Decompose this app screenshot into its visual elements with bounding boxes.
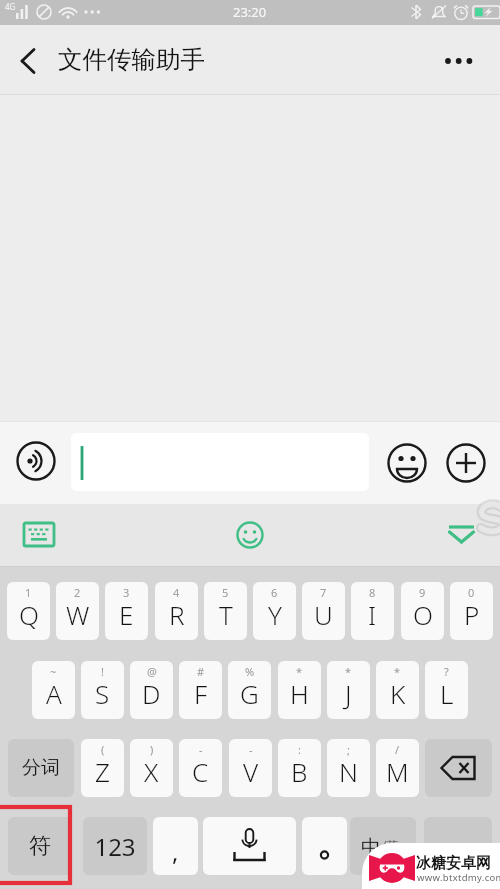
staticText: - bbox=[199, 742, 203, 757]
staticText: O bbox=[413, 597, 433, 632]
staticText: 冰糖安卓网 bbox=[416, 854, 491, 873]
staticText: ) bbox=[150, 742, 154, 757]
staticText: X bbox=[144, 754, 159, 789]
staticText: U bbox=[314, 597, 333, 632]
button[interactable]: 123 bbox=[83, 817, 147, 875]
staticText: ~ bbox=[50, 664, 57, 679]
staticText: 中 bbox=[361, 835, 381, 860]
button[interactable]: 0 bbox=[450, 582, 493, 640]
button[interactable]: 中 bbox=[350, 817, 416, 875]
button[interactable]: 4 bbox=[155, 582, 198, 640]
button[interactable]: Period bbox=[302, 817, 347, 875]
staticText: K bbox=[390, 676, 406, 711]
button[interactable]: More options bbox=[430, 25, 500, 95]
staticText: J bbox=[345, 676, 352, 711]
button[interactable]: ( bbox=[81, 739, 124, 797]
staticText: 6 bbox=[271, 585, 278, 600]
button[interactable]: Keyboard bbox=[14, 514, 56, 556]
staticText: * bbox=[345, 664, 352, 679]
staticText: L bbox=[440, 676, 454, 711]
staticText: 7 bbox=[320, 585, 327, 600]
button[interactable]: 符 bbox=[8, 817, 72, 875]
staticText: % bbox=[245, 664, 255, 679]
button[interactable]: 8 bbox=[351, 582, 394, 640]
staticText: 0 bbox=[468, 585, 475, 600]
button[interactable]: @ bbox=[130, 661, 173, 719]
staticText: G bbox=[240, 676, 259, 711]
button[interactable]: Space bbox=[203, 817, 296, 875]
staticText: I bbox=[368, 597, 377, 632]
staticText: 2 bbox=[74, 585, 81, 600]
staticText: ( bbox=[101, 742, 105, 757]
button[interactable]: * bbox=[327, 661, 370, 719]
staticText: 9 bbox=[419, 585, 426, 600]
staticText: Y bbox=[268, 597, 282, 632]
staticText: C bbox=[192, 754, 209, 789]
button[interactable]: - bbox=[179, 739, 222, 797]
button[interactable]: Voice input bbox=[12, 439, 58, 485]
button[interactable]: ) bbox=[130, 739, 173, 797]
button[interactable]: Back bbox=[0, 25, 52, 95]
staticText: 4G bbox=[5, 1, 16, 12]
button[interactable]: 分词 bbox=[8, 739, 74, 797]
staticText: 8 bbox=[369, 585, 376, 600]
staticText: 1 bbox=[25, 585, 32, 600]
staticText: 符 bbox=[29, 832, 51, 860]
button[interactable]: Emoji bbox=[387, 443, 427, 483]
staticText: D bbox=[142, 676, 161, 711]
staticText: ? bbox=[444, 664, 449, 679]
staticText: ; bbox=[347, 742, 350, 757]
staticText: : bbox=[298, 742, 301, 757]
staticText: * bbox=[394, 664, 401, 679]
staticText: 文件传输助手 bbox=[58, 44, 205, 75]
button[interactable]: Backspace bbox=[425, 739, 492, 797]
button[interactable]: ! bbox=[81, 661, 124, 719]
button[interactable]: * bbox=[376, 661, 419, 719]
button[interactable]: 1 bbox=[7, 582, 50, 640]
button[interactable]: Hide keyboard bbox=[441, 516, 483, 558]
button[interactable] bbox=[424, 817, 492, 875]
staticText: M bbox=[386, 754, 409, 789]
button[interactable]: 7 bbox=[302, 582, 345, 640]
button[interactable]: 2 bbox=[56, 582, 99, 640]
button[interactable]: - bbox=[229, 739, 272, 797]
button[interactable]: 6 bbox=[253, 582, 296, 640]
button[interactable]: Message input bbox=[71, 433, 369, 491]
staticText: # bbox=[197, 664, 205, 679]
staticText: / bbox=[395, 742, 400, 757]
staticText: P bbox=[464, 597, 480, 632]
button[interactable]: ; bbox=[327, 739, 370, 797]
button[interactable]: : bbox=[278, 739, 321, 797]
button[interactable]: # bbox=[179, 661, 222, 719]
staticText: Q bbox=[19, 597, 39, 632]
button[interactable]: 3 bbox=[105, 582, 148, 640]
staticText: E bbox=[119, 597, 134, 632]
staticText: 123 bbox=[94, 830, 136, 863]
button[interactable]: ~ bbox=[32, 661, 75, 719]
staticText: A bbox=[46, 676, 62, 711]
staticText: 分词 bbox=[22, 756, 60, 780]
button[interactable]: * bbox=[278, 661, 321, 719]
staticText: /英 bbox=[382, 837, 399, 853]
staticText: R bbox=[169, 597, 185, 632]
button[interactable]: Emoji keyboard bbox=[230, 515, 270, 555]
staticText: 5 bbox=[222, 585, 229, 600]
button[interactable]: % bbox=[228, 661, 271, 719]
button[interactable]: , bbox=[153, 817, 198, 875]
staticText: T bbox=[219, 597, 233, 632]
button[interactable]: 5 bbox=[204, 582, 247, 640]
staticText: , bbox=[172, 835, 179, 868]
staticText: www.btxtdmy.com bbox=[417, 871, 500, 884]
button[interactable]: / bbox=[376, 739, 419, 797]
button[interactable]: ? bbox=[425, 661, 468, 719]
staticText: H bbox=[290, 676, 309, 711]
staticText: * bbox=[296, 664, 303, 679]
staticText: - bbox=[249, 742, 253, 757]
staticText: 3 bbox=[123, 585, 130, 600]
button[interactable]: More functions bbox=[446, 443, 486, 483]
staticText: V bbox=[243, 754, 259, 789]
staticText: S bbox=[95, 676, 110, 711]
button[interactable]: 9 bbox=[401, 582, 444, 640]
staticText: 4 bbox=[173, 585, 180, 600]
staticText: B bbox=[291, 754, 308, 789]
